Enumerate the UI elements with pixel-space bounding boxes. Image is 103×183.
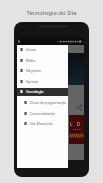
staticText: THE END (73, 128, 81, 130)
button[interactable]: Home (17, 44, 68, 55)
staticText: Tecnologia do Dia (0, 9, 103, 17)
button[interactable]: Comercializado (17, 108, 68, 119)
staticText: Xpresto (26, 79, 39, 84)
staticText: Comercializado (30, 111, 55, 116)
button[interactable]: Site Mavericks (17, 118, 68, 129)
button[interactable]: Xpresto (17, 76, 68, 87)
button[interactable]: Dicas de programação (17, 97, 68, 108)
staticText: Mídia (26, 58, 35, 63)
button[interactable]: Negócios (17, 65, 68, 76)
staticText: Tecnologia (26, 89, 44, 94)
staticText: Home (26, 47, 36, 52)
button[interactable]: Tecnologia (17, 86, 68, 97)
staticText: Dicas de programação (30, 100, 67, 105)
button[interactable]: Share (76, 104, 83, 111)
staticText: Negócios (26, 68, 42, 73)
staticText: L D (70, 121, 81, 128)
button[interactable]: Mídia (17, 55, 68, 66)
staticText: Site Mavericks (30, 121, 54, 126)
